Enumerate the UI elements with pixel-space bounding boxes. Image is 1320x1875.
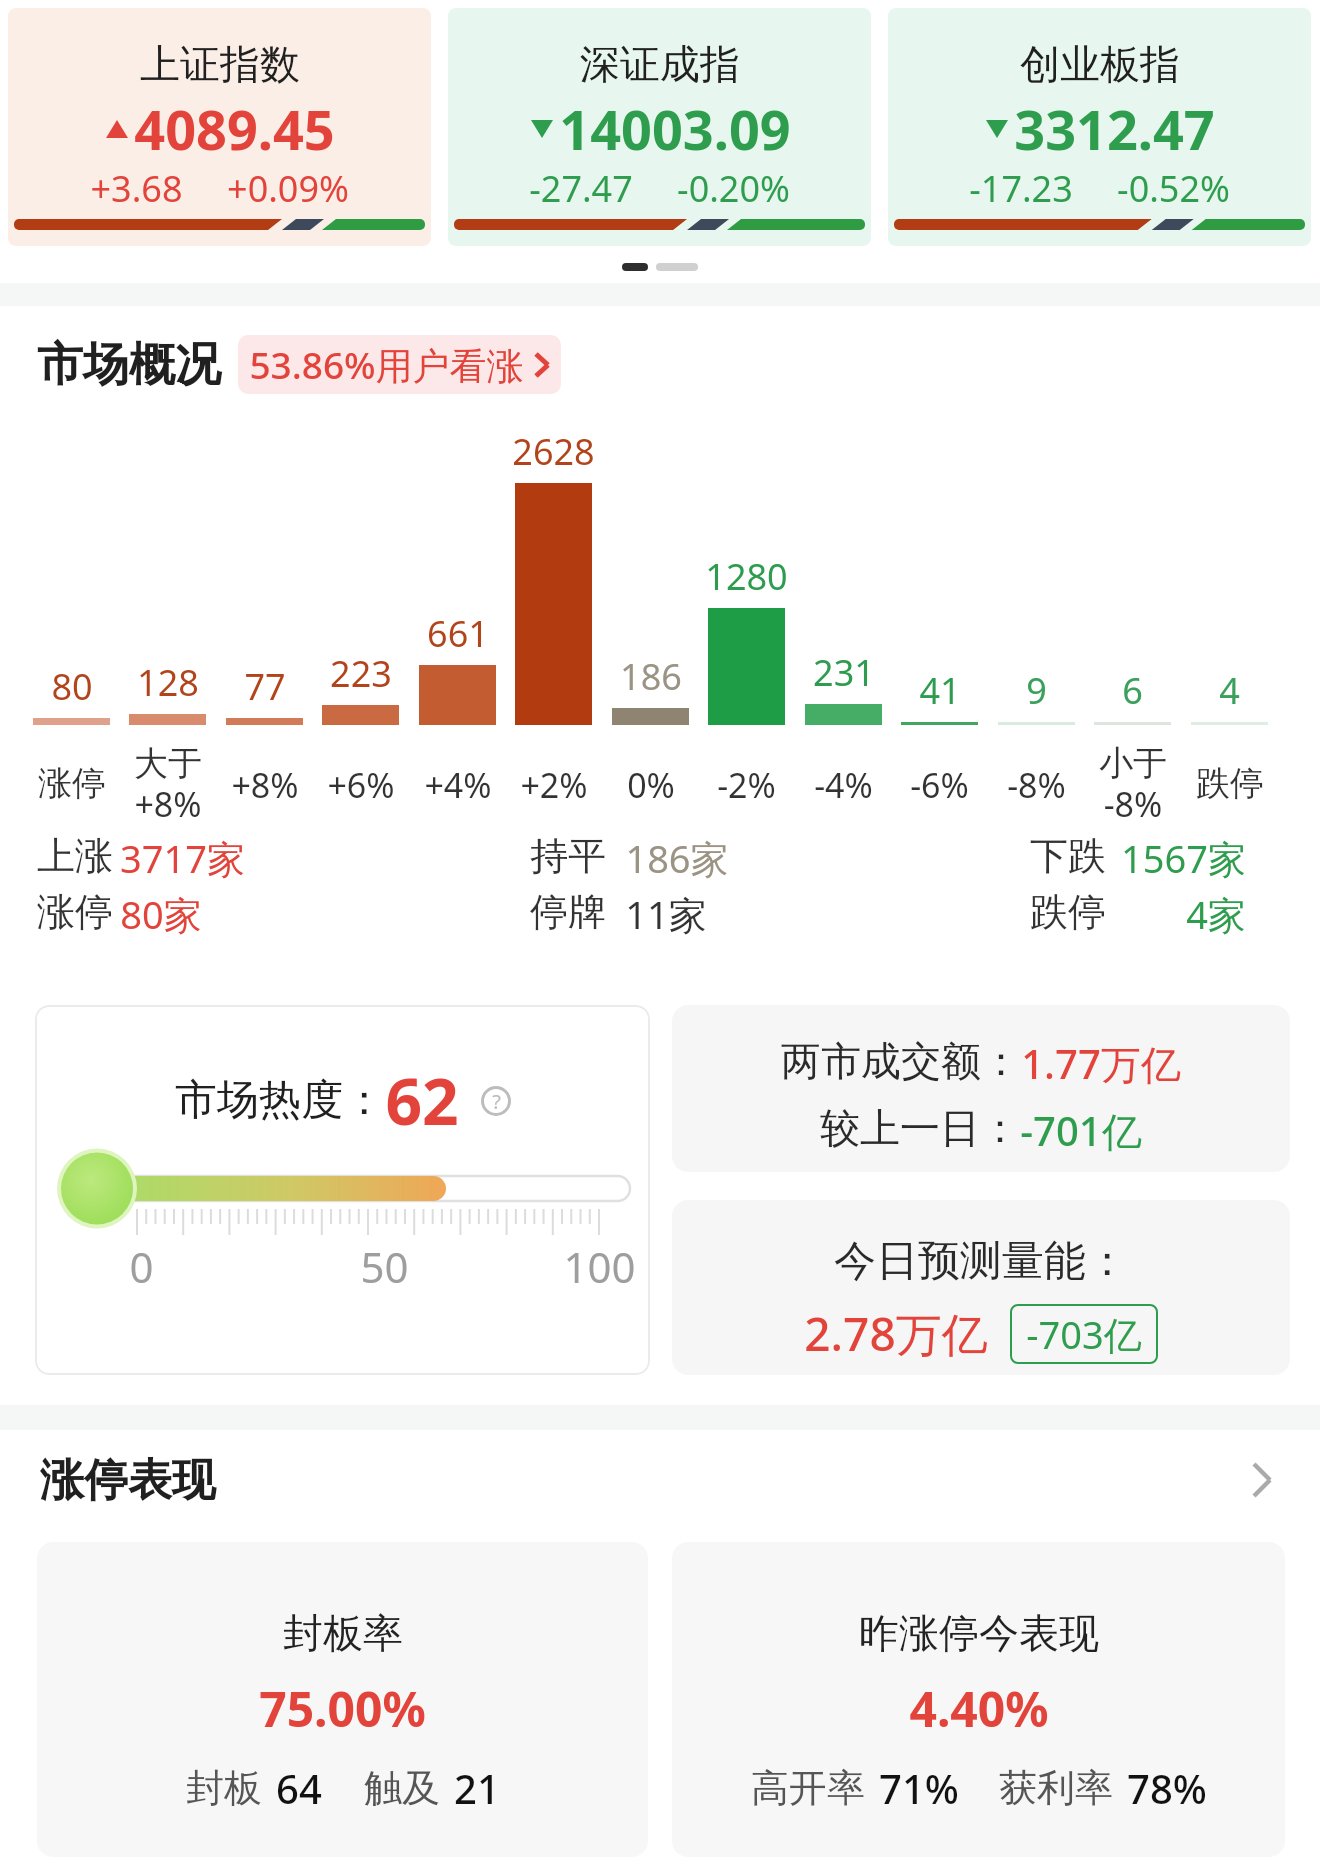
staticText: 较上一日： (820, 1103, 1020, 1153)
staticText: -27.47 (529, 164, 633, 213)
staticText: -0.52% (1117, 164, 1230, 213)
staticText: 3312.47 (1014, 92, 1215, 166)
staticText: 71% (879, 1761, 959, 1815)
button[interactable]: 市场热度： (35, 1005, 650, 1375)
staticText: -703亿 (1026, 1308, 1142, 1360)
staticText: -701亿 (1020, 1103, 1142, 1158)
staticText: 78% (1127, 1761, 1207, 1815)
staticText: 今日预测量能： (834, 1235, 1128, 1288)
staticText: 80 (51, 662, 93, 711)
staticText: 53.86%用户看涨 (249, 339, 524, 390)
staticText: 下跌 (1030, 832, 1106, 880)
staticText: -4% (814, 762, 873, 808)
staticText: 高开率 (751, 1764, 865, 1812)
staticText: -0.20% (677, 164, 790, 213)
staticText: 1280 (705, 552, 788, 601)
staticText: 6 (1122, 666, 1143, 715)
staticText: 触及 (364, 1764, 440, 1812)
staticText: 2628 (512, 427, 595, 476)
staticText: 62 (385, 1057, 459, 1144)
button[interactable]: 53.86%用户看涨 (238, 335, 561, 394)
staticText: 跌停 (1030, 888, 1106, 936)
staticText: +4% (424, 762, 492, 808)
staticText: 9 (1026, 666, 1047, 715)
staticText: 1567家 (1121, 832, 1246, 884)
staticText: 64 (276, 1761, 322, 1815)
button[interactable]: 创业板指 (888, 8, 1311, 246)
staticText: 4.40% (909, 1676, 1049, 1741)
staticText: 186家 (625, 832, 729, 884)
staticText: 100 (563, 1238, 636, 1295)
staticText: -2% (717, 762, 776, 808)
staticText: 0 (129, 1238, 154, 1295)
button[interactable]: 两市成交额： (672, 1005, 1290, 1172)
staticText: +3.68 (90, 164, 183, 213)
staticText: 661 (427, 609, 489, 658)
staticText: 50 (360, 1238, 409, 1295)
staticText: 封板率 (283, 1608, 403, 1658)
staticText: 0% (627, 762, 675, 808)
staticText: -17.23 (969, 164, 1073, 213)
staticText: 市场热度： (175, 1074, 385, 1127)
staticText: 2.78万亿 (804, 1302, 988, 1365)
button[interactable]: 封板率 (37, 1542, 648, 1857)
button[interactable]: 上证指数 (8, 8, 431, 246)
staticText: 4089.45 (134, 92, 335, 166)
staticText: 80家 (120, 888, 202, 940)
staticText: 77 (244, 662, 286, 711)
staticText: 4家 (1186, 888, 1246, 940)
staticText: 186 (620, 652, 682, 701)
staticText: 昨涨停今表现 (859, 1608, 1099, 1658)
staticText: 223 (330, 649, 392, 698)
staticText: 上证指数 (140, 39, 300, 89)
staticText: +6% (327, 762, 395, 808)
staticText: -6% (910, 762, 969, 808)
staticText: 深证成指 (580, 39, 740, 89)
button[interactable]: 深证成指 (448, 8, 871, 246)
staticText: 128 (137, 658, 199, 707)
staticText: 小于 -8% (1099, 742, 1167, 827)
staticText: 涨停 (37, 888, 113, 936)
staticText: 上涨 (37, 832, 113, 880)
staticText: 21 (454, 1761, 500, 1815)
staticText: 231 (813, 648, 875, 697)
staticText: 获利率 (999, 1764, 1113, 1812)
button[interactable]: 昨涨停今表现 (672, 1542, 1285, 1857)
staticText: 大于 +8% (134, 742, 202, 827)
staticText: 持平 (530, 832, 606, 880)
staticText: +2% (520, 762, 588, 808)
staticText: 跌停 (1196, 762, 1264, 805)
staticText: 封板 (186, 1764, 262, 1812)
staticText: 1.77万亿 (1021, 1036, 1181, 1091)
staticText: 涨停表现 (40, 1453, 216, 1508)
staticText: 11家 (625, 888, 707, 940)
button[interactable]: 今日预测量能： (672, 1200, 1290, 1375)
staticText: ? (492, 1088, 501, 1115)
staticText: 停牌 (530, 888, 606, 936)
staticText: 14003.09 (559, 92, 791, 166)
staticText: 市场概况 (37, 336, 221, 394)
staticText: 3717家 (120, 832, 245, 884)
staticText: 两市成交额： (781, 1036, 1021, 1086)
staticText: 41 (919, 666, 961, 715)
staticText: 4 (1219, 666, 1240, 715)
staticText: -8% (1007, 762, 1066, 808)
staticText: +0.09% (227, 164, 349, 213)
staticText: +8% (231, 762, 299, 808)
staticText: 创业板指 (1020, 39, 1180, 89)
staticText: 涨停 (38, 762, 106, 805)
staticText: 75.00% (259, 1676, 426, 1741)
button[interactable]: 涨停表现 (0, 1452, 1320, 1508)
